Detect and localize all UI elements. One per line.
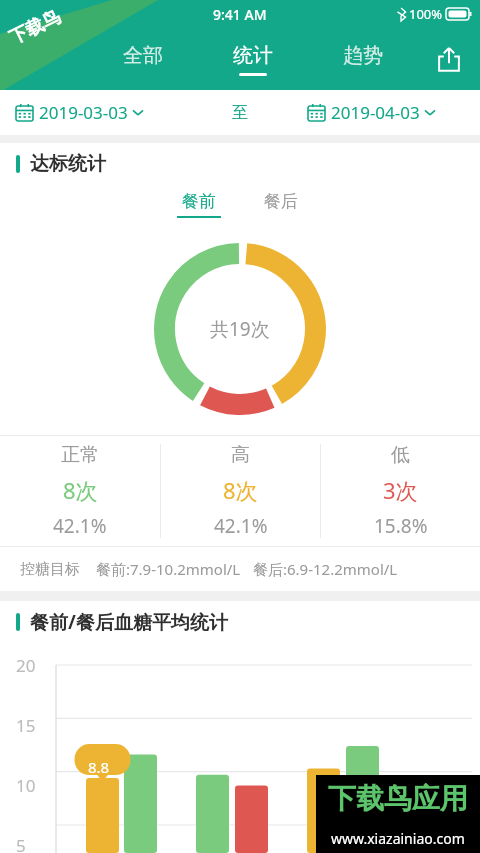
staticText: 全部 [123, 43, 163, 68]
staticText: 100% [409, 5, 443, 23]
staticText: 15 [16, 714, 36, 737]
staticText: 统计 [233, 43, 273, 68]
staticText: 正常 [61, 443, 99, 467]
staticText: 餐后:6.9-12.2mmol/L [253, 559, 398, 579]
button[interactable]: 全部 [88, 28, 198, 90]
button[interactable]: 餐后 [255, 191, 307, 218]
staticText: 共19次 [210, 316, 270, 342]
staticText: 3次 [383, 475, 418, 505]
staticText: 8次 [63, 475, 98, 505]
staticText: 餐前:7.9-10.2mmol/L [96, 559, 241, 579]
staticText: 2019-04-03 [331, 101, 420, 124]
button[interactable]: 趋势 [308, 28, 418, 90]
staticText: 20 [16, 654, 36, 677]
staticText: www.xiazainiao.com [331, 829, 465, 848]
staticText: 高 [231, 443, 250, 467]
staticText: 达标统计 [30, 152, 106, 176]
staticText: 15.8% [374, 513, 428, 539]
staticText: 餐前/餐后血糖平均统计 [30, 609, 228, 635]
staticText: 控糖目标 [20, 560, 80, 579]
button[interactable]: 正常 [0, 436, 160, 546]
staticText: 2019-03-03 [39, 101, 128, 124]
button[interactable]: 餐前 [173, 191, 225, 218]
staticText: 低 [391, 443, 410, 467]
staticText: 8次 [223, 475, 258, 505]
staticText: 趋势 [343, 43, 383, 68]
button[interactable]: 低 [321, 436, 480, 546]
button[interactable]: Share [418, 28, 480, 90]
staticText: 42.1% [53, 513, 107, 539]
staticText: 下载鸟 [6, 5, 64, 50]
staticText: 餐前 [182, 191, 216, 212]
staticText: 5 [16, 834, 26, 853]
staticText: 10 [16, 774, 36, 797]
staticText: 9:41 AM [213, 5, 267, 24]
button[interactable]: 统计 [198, 28, 308, 90]
staticText: 至 [232, 103, 248, 123]
staticText: 下载鸟应用 [328, 781, 468, 816]
button[interactable]: 高 [161, 436, 320, 546]
button[interactable]: 2019-03-03 [16, 90, 188, 135]
staticText: 8.8 [88, 757, 110, 777]
button[interactable]: 2019-04-03 [308, 90, 480, 135]
staticText: 42.1% [214, 513, 268, 539]
staticText: 餐后 [264, 191, 298, 212]
